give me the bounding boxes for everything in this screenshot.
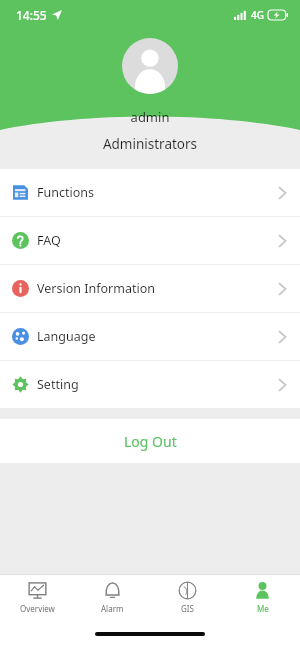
button[interactable]: Overview (0, 575, 75, 619)
button[interactable]: Language (0, 313, 300, 360)
staticText: admin (0, 108, 300, 126)
button[interactable]: Log Out (0, 419, 300, 463)
staticText: 14:55 (16, 7, 47, 23)
staticText: Me (257, 603, 269, 614)
staticText: GIS (181, 603, 194, 614)
staticText: Setting (37, 376, 79, 393)
button[interactable]: Functions (0, 169, 300, 216)
button[interactable]: Alarm (75, 575, 150, 619)
button[interactable]: Me (225, 575, 300, 619)
button[interactable]: GIS (150, 575, 225, 619)
button[interactable]: FAQ (0, 217, 300, 264)
staticText: Alarm (101, 603, 124, 614)
staticText: Overview (20, 603, 55, 614)
button[interactable]: Version Information (0, 265, 300, 312)
button[interactable]: Setting (0, 361, 300, 408)
staticText: Version Information (37, 280, 155, 297)
staticText: Administrators (0, 135, 300, 153)
staticText: FAQ (37, 232, 61, 249)
staticText: Log Out (124, 432, 177, 451)
staticText: 4G (251, 8, 264, 22)
staticText: Functions (37, 184, 94, 201)
staticText: Language (37, 328, 96, 345)
